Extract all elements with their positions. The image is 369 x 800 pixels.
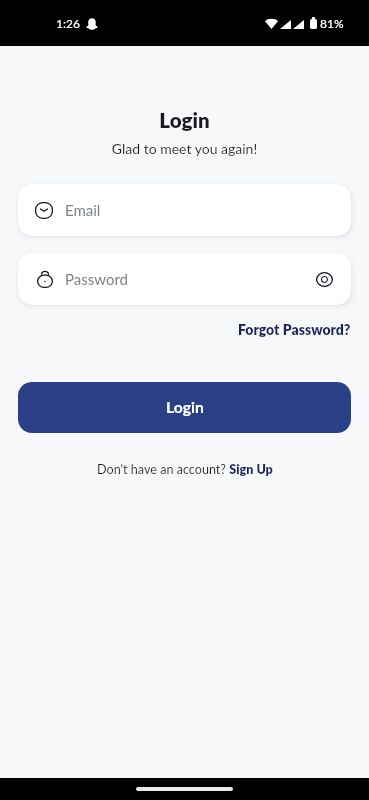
staticText: 1:26 [56,16,80,30]
staticText: Email [65,201,101,219]
button[interactable]: Login [18,382,351,433]
staticText: Password [65,270,128,288]
staticText: 81% [320,16,344,30]
button[interactable]: Don't have an account? Sign Up [97,462,273,477]
button[interactable]: Password [18,253,351,305]
staticText: Login [166,398,204,417]
button[interactable]: Email [18,184,351,236]
button[interactable]: Forgot Password? [238,321,351,338]
staticText: Forgot Password? [238,321,351,338]
staticText: Glad to meet you again! [0,140,369,157]
button[interactable]: Show password [315,270,333,288]
staticText: Login [0,108,369,133]
